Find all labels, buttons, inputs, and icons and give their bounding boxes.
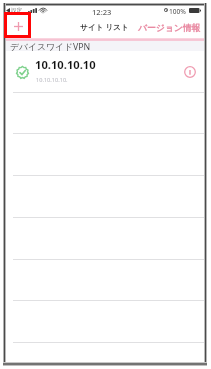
staticText: 設定 [11, 7, 23, 14]
staticText: 12:23 [92, 7, 112, 17]
staticText: 10.10.10.10 [35, 57, 96, 72]
button[interactable]: バージョン情報 [138, 23, 201, 34]
button[interactable]: Info [179, 61, 201, 83]
button[interactable]: 10.10.10.10 [5, 52, 205, 92]
staticText: サイト リスト [80, 22, 129, 32]
staticText: バージョン情報 [138, 23, 201, 34]
button[interactable]: Add site [7, 15, 29, 37]
staticText: 10.10.10.10. [36, 76, 68, 84]
staticText: 100% [169, 7, 186, 16]
staticText: デバイスワイドVPN [10, 41, 91, 51]
